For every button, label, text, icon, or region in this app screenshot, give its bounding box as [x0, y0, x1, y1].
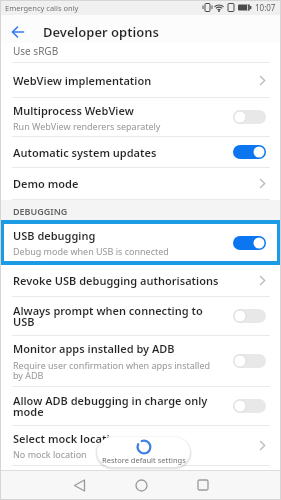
staticText: Multiprocess WebView — [13, 103, 134, 118]
button[interactable]: Multiprocess WebView — [0, 98, 281, 136]
staticText: Developer options — [43, 23, 159, 41]
staticText: Emergency calls only — [5, 3, 79, 13]
staticText: Debug mode when USB is connected — [13, 245, 169, 257]
staticText: Require user confirmation when apps inst… — [13, 359, 211, 381]
staticText: WebView implementation — [13, 73, 152, 88]
staticText: Always prompt when connecting to USB — [13, 303, 203, 330]
button[interactable]: USB debugging — [0, 220, 281, 265]
staticText: DEBUGGING — [13, 205, 68, 217]
button[interactable]: Revoke USB debugging authorisations — [0, 265, 281, 296]
staticText: 10:07 — [255, 2, 276, 13]
button[interactable]: Demo mode — [0, 168, 281, 199]
button[interactable]: Allow ADB debugging in charge only mode — [0, 387, 281, 425]
button[interactable] — [110, 470, 172, 500]
button[interactable] — [0, 20, 36, 43]
button[interactable]: Automatic system updates — [0, 137, 281, 167]
button[interactable]: Monitor apps installed by ADB — [0, 336, 281, 386]
staticText: USB debugging — [13, 228, 96, 243]
button[interactable]: Select mock location app — [0, 426, 281, 465]
staticText: Demo mode — [13, 176, 79, 191]
staticText: Revoke USB debugging authorisations — [13, 273, 219, 288]
button[interactable] — [48, 470, 110, 500]
staticText: Run WebView renderers separately — [13, 120, 161, 132]
staticText: Use sRGB — [13, 44, 59, 58]
staticText: Automatic system updates — [13, 145, 157, 160]
staticText: Monitor apps installed by ADB — [13, 341, 175, 356]
staticText: Select mock location app — [13, 431, 147, 446]
button[interactable] — [172, 470, 234, 500]
button[interactable]: WebView implementation — [0, 63, 281, 97]
staticText: No mock location — [13, 448, 87, 460]
staticText: Restore default settings — [102, 455, 186, 465]
staticText: Allow ADB debugging in charge only mode — [13, 393, 208, 420]
button[interactable]: Always prompt when connecting to USB — [0, 297, 281, 335]
